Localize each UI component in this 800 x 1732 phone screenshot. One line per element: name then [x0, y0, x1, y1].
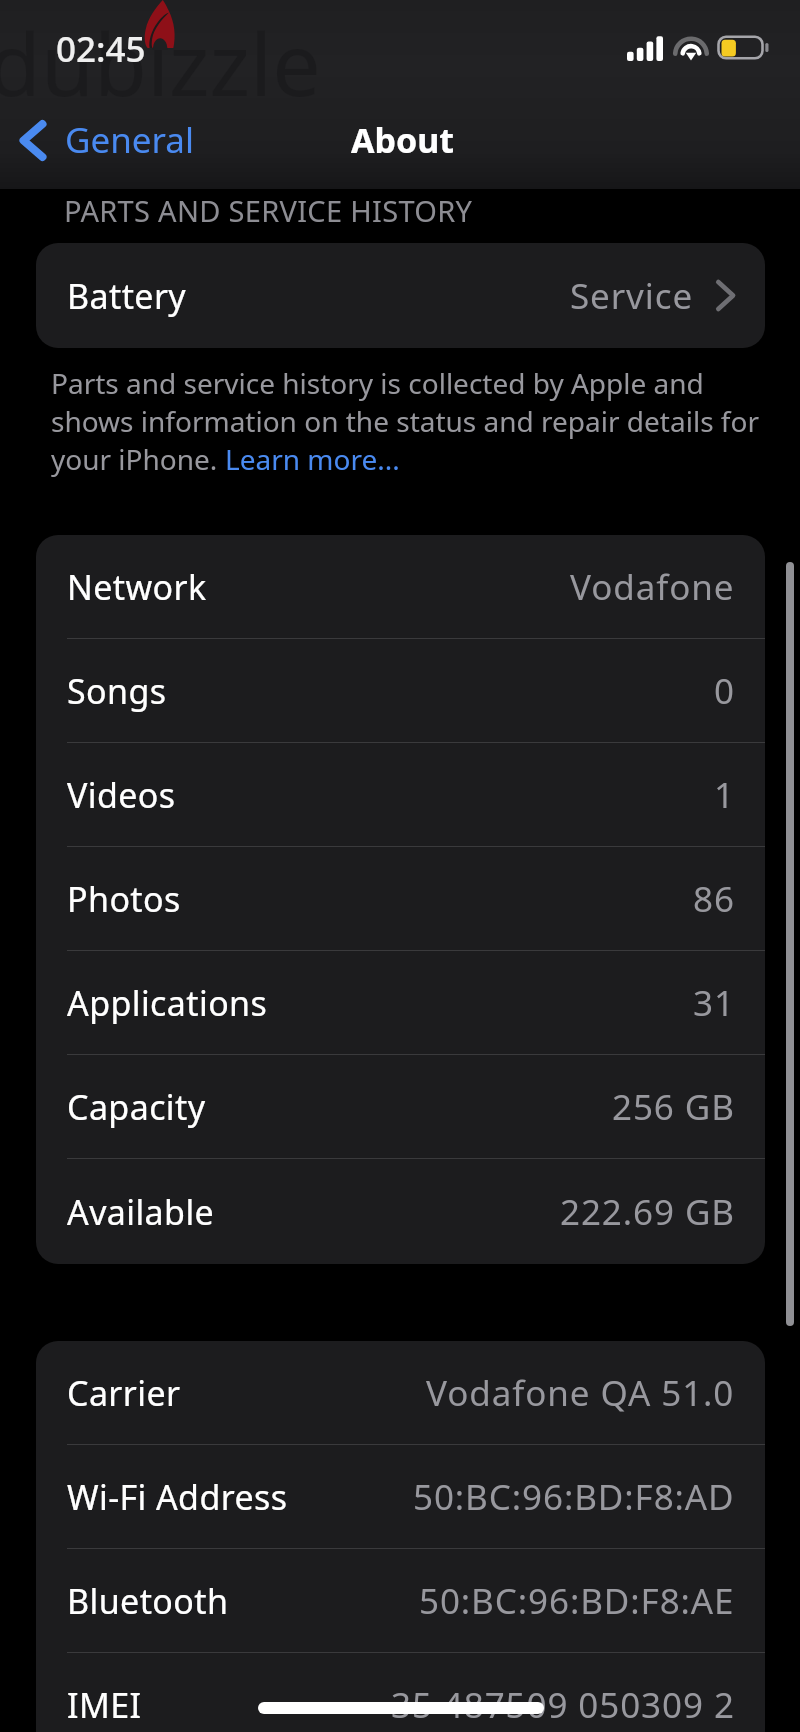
staticText: Vodafone: [570, 563, 735, 611]
staticText: Photos: [67, 876, 181, 922]
staticText: Bluetooth: [67, 1578, 229, 1624]
staticText: 0: [714, 667, 735, 715]
staticText: 86: [693, 875, 735, 923]
button[interactable]: Network: [36, 535, 765, 639]
staticText: 31: [693, 979, 735, 1027]
staticText: Parts and service history is collected b…: [51, 364, 704, 402]
staticText: Songs: [67, 668, 167, 714]
staticText: IMEI: [67, 1682, 142, 1728]
button[interactable]: Wi-Fi Address: [36, 1445, 765, 1549]
staticText: Network: [67, 564, 207, 610]
staticText: 50:BC:96:BD:F8:AD: [413, 1473, 735, 1521]
button[interactable]: Capacity: [36, 1055, 765, 1159]
staticText: 1: [714, 771, 735, 819]
button[interactable]: General: [0, 102, 211, 178]
staticText: 02:45: [56, 25, 146, 73]
staticText: your iPhone.: [51, 440, 225, 478]
staticText: 256 GB: [612, 1083, 735, 1131]
staticText: Wi-Fi Address: [67, 1474, 288, 1520]
staticText: Available: [67, 1189, 215, 1235]
button[interactable]: Carrier: [36, 1341, 765, 1445]
staticText: Carrier: [67, 1370, 181, 1416]
button[interactable]: Songs: [36, 639, 765, 743]
staticText: 222.69 GB: [560, 1188, 735, 1236]
staticText: About: [351, 117, 455, 163]
button[interactable]: Photos: [36, 847, 765, 951]
staticText: General: [65, 116, 195, 164]
staticText: dubizzle: [0, 4, 321, 121]
button[interactable]: IMEI: [36, 1653, 765, 1732]
button[interactable]: Bluetooth: [36, 1549, 765, 1653]
button[interactable]: Battery: [36, 243, 765, 348]
button[interactable]: Learn more...: [225, 440, 400, 478]
staticText: shows information on the status and repa…: [51, 402, 759, 440]
staticText: 35 487509 050309 2: [391, 1681, 735, 1729]
staticText: PARTS AND SERVICE HISTORY: [64, 191, 473, 230]
staticText: 50:BC:96:BD:F8:AE: [419, 1577, 735, 1625]
staticText: Battery: [67, 273, 187, 319]
staticText: Applications: [67, 980, 268, 1026]
button[interactable]: Videos: [36, 743, 765, 847]
staticText: Videos: [67, 772, 176, 818]
button[interactable]: Applications: [36, 951, 765, 1055]
staticText: Capacity: [67, 1084, 206, 1130]
button[interactable]: Available: [36, 1159, 765, 1264]
staticText: Vodafone QA 51.0: [426, 1369, 735, 1417]
staticText: Service: [570, 272, 694, 320]
